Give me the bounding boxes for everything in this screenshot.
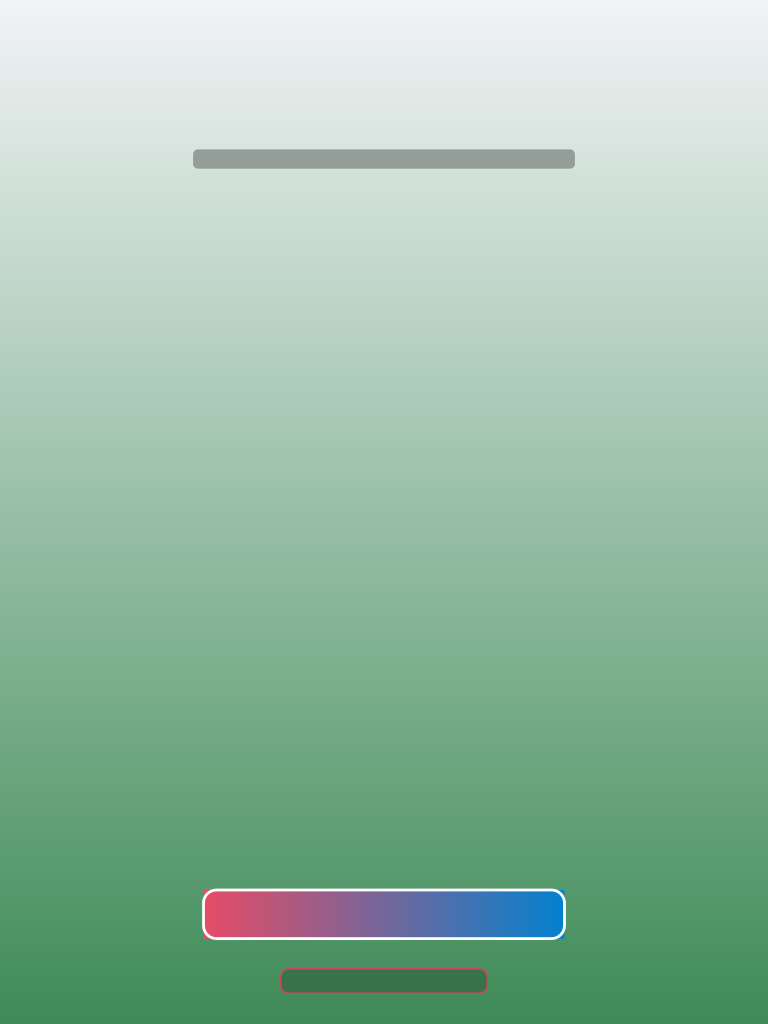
- button[interactable]: More options: [281, 969, 487, 993]
- button[interactable]: Continue: [203, 890, 564, 939]
